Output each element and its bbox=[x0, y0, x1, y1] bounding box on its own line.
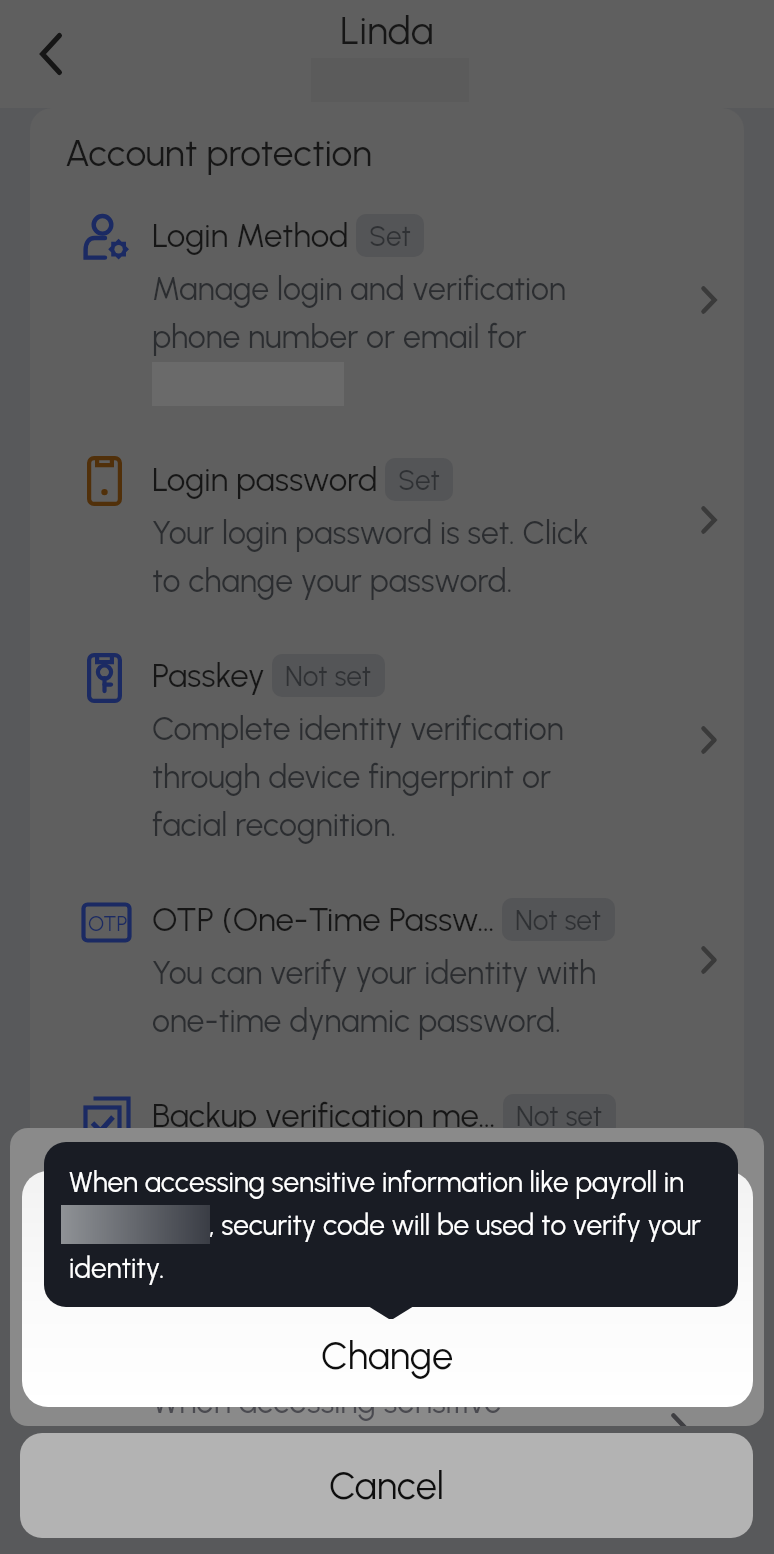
button[interactable]: Change bbox=[22, 1171, 753, 1407]
staticText: Not set bbox=[516, 1099, 603, 1133]
button[interactable]: Passkey bbox=[30, 650, 744, 838]
button[interactable]: Cancel bbox=[20, 1433, 753, 1538]
staticText: identity. bbox=[69, 1244, 165, 1287]
staticText: Cancel bbox=[329, 1463, 444, 1509]
button[interactable]: Login Method bbox=[30, 210, 744, 398]
staticText: You can verify your identity with one-ti… bbox=[152, 946, 597, 1042]
staticText: When accessing sensitive information lik… bbox=[69, 1158, 685, 1201]
staticText: Set bbox=[369, 219, 411, 253]
staticText: Login password bbox=[152, 460, 378, 500]
staticText: OTP (One-Time Passw… bbox=[152, 900, 495, 940]
staticText: Backup verification me… bbox=[152, 1096, 496, 1136]
button[interactable]: Back bbox=[16, 9, 86, 99]
staticText: Complete identity verification through d… bbox=[152, 702, 564, 846]
staticText: Change bbox=[321, 1333, 454, 1379]
staticText: When accessing sensitive bbox=[152, 1383, 502, 1421]
staticText: Set bbox=[398, 463, 440, 497]
button[interactable]: OTP bbox=[30, 894, 744, 1034]
staticText: Manage login and verification phone numb… bbox=[152, 262, 566, 358]
staticText: OTP bbox=[88, 911, 128, 936]
staticText: Passkey bbox=[152, 656, 265, 696]
staticText: Account protection bbox=[65, 131, 372, 175]
staticText: , security code will be used to verify y… bbox=[209, 1201, 702, 1244]
staticText: Linda bbox=[340, 7, 434, 54]
button[interactable]: Login password bbox=[30, 454, 744, 594]
button[interactable]: Backup verification me… bbox=[30, 1090, 744, 1230]
staticText: Your login password is set. Click to cha… bbox=[152, 506, 589, 602]
staticText: Login Method bbox=[152, 216, 349, 256]
staticText: When accessing sensitive information lik… bbox=[152, 1142, 502, 1238]
staticText: Not set bbox=[515, 903, 602, 937]
staticText: Not set bbox=[285, 659, 372, 693]
